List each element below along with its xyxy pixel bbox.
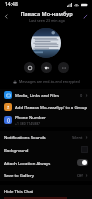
staticText: Phone Number [15,114,46,120]
staticText: Last seen 23 min ago [29,18,65,23]
button[interactable]: Media, Links and Files [0,89,92,101]
staticText: Notifications Sounds [4,134,72,140]
button[interactable]: Back [0,10,13,23]
staticText: Save to Gallery [4,172,77,178]
staticText: 0 [80,93,83,98]
button[interactable]: More options [58,62,69,73]
staticText: Паваса Мо-намбур [20,10,73,17]
staticText: Media, Links and Files [15,92,59,98]
button[interactable]: Background [0,143,92,156]
staticText: 14:48 [5,1,18,8]
button[interactable]: Call [24,62,35,73]
button[interactable]: Save to Gallery [0,169,92,181]
button[interactable]: Hide This Chat [0,185,92,197]
button[interactable]: Profile photo [31,28,61,58]
button[interactable]: Attach Location Always [0,156,92,169]
staticText: Off [77,173,83,178]
staticText: Hide This Chat [4,188,34,194]
staticText: Attach Location Always [4,160,77,166]
button[interactable]: Notifications Sounds [0,131,92,143]
staticText: Messages are end-to-end encrypted [19,79,80,84]
staticText: Add Паваса Мо-намбур' to a Group [15,104,88,110]
button[interactable]: Attach Location Always toggle [77,159,88,166]
staticText: Background [4,147,81,153]
button[interactable]: Phone Number [0,113,92,127]
button[interactable]: Video call [41,62,52,73]
button[interactable]: Clear Chat Content [0,197,92,199]
staticText: +1 380 7145887 [15,121,41,126]
button[interactable]: Add Паваса Мо-намбур' to a Group [0,101,92,113]
button[interactable]: Edit [79,10,92,23]
staticText: Silent [72,135,83,140]
